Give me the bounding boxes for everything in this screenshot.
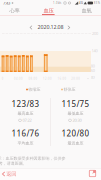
button[interactable]: 血压: [33, 6, 63, 15]
button[interactable]: 心率: [0, 6, 29, 15]
staticText: 最近血压: [67, 141, 83, 146]
staticText: 舒张压: [63, 87, 75, 92]
staticText: 1.0k/s: [53, 1, 61, 5]
staticText: 提示：血压数据受多种因素影响，仅供参: [0, 156, 65, 161]
staticText: 最低血压: [67, 111, 83, 116]
staticText: 最高血压: [17, 111, 33, 116]
staticText: 200: [92, 31, 98, 36]
staticText: 平均血压: [17, 141, 33, 146]
staticText: 2020.12.08: [37, 23, 63, 31]
button[interactable]: 血氧: [71, 6, 101, 15]
button[interactable]: 后一天: [65, 23, 73, 31]
staticText: 4G: [79, 1, 83, 5]
staticText: 40: [91, 75, 95, 80]
button[interactable]: 前一天: [27, 23, 35, 31]
staticText: 12:00: [43, 77, 52, 80]
button[interactable]: 返回: [1, 169, 18, 179]
staticText: 08:00: [28, 77, 37, 80]
staticText: 115/75: [61, 99, 89, 109]
staticText: 7:43: [3, 0, 10, 6]
staticText: 116/76: [11, 128, 39, 139]
staticText: 123/83: [11, 99, 39, 109]
staticText: 血氧: [81, 7, 91, 14]
staticText: 80: [91, 63, 95, 68]
staticText: 心率: [9, 7, 19, 14]
staticText: 04:00: [14, 77, 23, 80]
staticText: 16:00: [57, 77, 66, 80]
staticText: 140: [91, 48, 97, 53]
staticText: 60: [91, 68, 95, 73]
staticText: 返回: [6, 171, 16, 177]
staticText: 85%: [94, 1, 100, 5]
button[interactable]: 分享: [88, 169, 97, 178]
staticText: 120/80: [61, 128, 89, 139]
staticText: 收缩压: [28, 87, 40, 92]
staticText: 考，请遵医嘱。: [0, 161, 27, 166]
staticText: 07:22: [22, 118, 31, 123]
staticText: 0: [2, 77, 4, 80]
staticText: 血压: [43, 7, 53, 14]
staticText: 20:00: [71, 77, 80, 80]
staticText: 20:30: [72, 118, 81, 123]
